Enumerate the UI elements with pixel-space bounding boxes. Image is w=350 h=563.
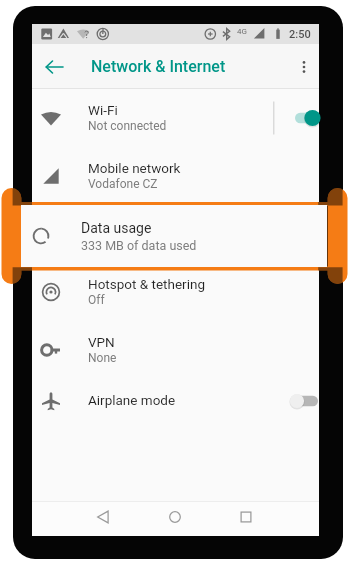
button[interactable]: Data usage [21,205,327,267]
staticText: Network & Internet [91,57,226,76]
button[interactable]: Wi-Fi [32,89,319,147]
button[interactable]: Hotspot & tethering [32,263,319,321]
button[interactable]: Airplane mode [32,379,319,423]
staticText: 333 MB of data used [81,238,197,253]
staticText: Mobile network [88,160,181,176]
staticText: VPN [88,334,115,350]
button[interactable]: Navigate up [40,44,68,89]
button[interactable]: Home [159,501,191,533]
staticText: Airplane mode [88,392,176,408]
button[interactable]: Mobile network [32,147,319,205]
staticText: None [88,351,117,365]
button[interactable]: Back [87,501,119,533]
staticText: 4G [237,27,247,36]
button[interactable]: More options [290,44,318,89]
staticText: 2:50 [289,28,311,41]
button[interactable]: Recent apps [230,501,262,533]
staticText: Data usage [81,220,152,236]
staticText: Wi-Fi [88,102,118,118]
staticText: Off [88,293,105,307]
button[interactable]: VPN [32,321,319,379]
staticText: Vodafone CZ [88,177,158,191]
staticText: Hotspot & tethering [88,276,205,292]
staticText: Not connected [88,119,167,133]
button[interactable] [32,205,319,263]
